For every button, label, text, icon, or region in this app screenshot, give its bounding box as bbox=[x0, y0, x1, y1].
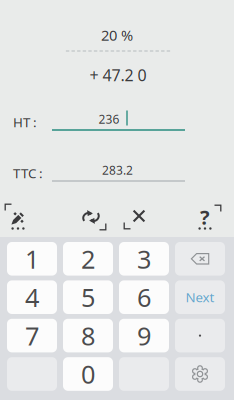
staticText: 236 bbox=[98, 111, 119, 127]
staticText: + 47.2 0 bbox=[89, 64, 146, 86]
button[interactable]: Delete bbox=[175, 242, 225, 276]
staticText: 8 bbox=[81, 319, 95, 352]
button[interactable]: 6 bbox=[119, 280, 169, 314]
staticText: HT : bbox=[13, 113, 37, 131]
staticText: 7 bbox=[25, 319, 39, 352]
button[interactable]: Settings bbox=[175, 357, 225, 391]
button[interactable]: 9 bbox=[119, 319, 169, 352]
button[interactable]: 1 bbox=[7, 242, 57, 276]
button[interactable]: 2 bbox=[63, 242, 113, 276]
staticText: 20 % bbox=[101, 25, 133, 45]
staticText: 9 bbox=[137, 319, 151, 352]
button[interactable]: 0 bbox=[63, 357, 113, 391]
button[interactable]: Swap values bbox=[73, 200, 113, 236]
button[interactable]: 5 bbox=[63, 280, 113, 314]
staticText: 3 bbox=[137, 242, 151, 276]
button[interactable]: Edit rate bbox=[0, 200, 40, 236]
button[interactable]: 236 bbox=[51, 108, 186, 134]
button[interactable]: 3 bbox=[119, 242, 169, 276]
button[interactable]: Clear bbox=[116, 200, 156, 236]
button[interactable]: Next bbox=[175, 280, 225, 314]
staticText: 283.2 bbox=[102, 162, 133, 178]
staticText: ? bbox=[200, 204, 210, 230]
staticText: 5 bbox=[81, 280, 95, 314]
button[interactable]: 8 bbox=[63, 319, 113, 352]
staticText: 0 bbox=[81, 357, 95, 391]
staticText: 4 bbox=[25, 280, 39, 314]
staticText: 1 bbox=[25, 242, 39, 276]
button[interactable]: Help bbox=[188, 200, 228, 236]
button[interactable]: 4 bbox=[7, 280, 57, 314]
button[interactable]: 283.2 bbox=[51, 159, 186, 185]
staticText: 2 bbox=[81, 242, 95, 276]
staticText: TTC : bbox=[13, 164, 43, 182]
button[interactable]: Decimal point bbox=[175, 319, 225, 352]
staticText: 6 bbox=[137, 280, 151, 314]
button[interactable]: 7 bbox=[7, 319, 57, 352]
staticText: Next bbox=[185, 288, 214, 306]
